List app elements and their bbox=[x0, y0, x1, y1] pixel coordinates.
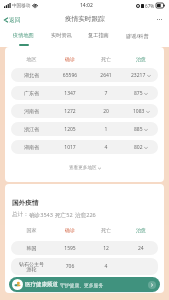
button[interactable]: 河南省 bbox=[11, 104, 158, 118]
staticText: 湖南省 bbox=[11, 144, 52, 150]
staticText: 1083 bbox=[133, 108, 145, 115]
staticText: 1347 bbox=[52, 90, 88, 97]
staticText: 医疗健康频道 bbox=[25, 281, 58, 288]
staticText: 广东省 bbox=[11, 90, 52, 96]
staticText: 875 bbox=[134, 90, 143, 97]
staticText: 确诊 bbox=[52, 227, 88, 233]
staticText: 复工指南 bbox=[88, 32, 109, 39]
staticText: 14:02 bbox=[80, 2, 93, 9]
button[interactable]: More options bbox=[154, 15, 165, 24]
button[interactable]: 返回 bbox=[2, 14, 23, 25]
staticText: 钻石公主号 游轮 bbox=[11, 261, 52, 273]
staticText: 2641 bbox=[88, 72, 124, 79]
staticText: 河南省 bbox=[11, 108, 52, 114]
staticText: 6 bbox=[88, 283, 124, 290]
staticText: 23217 bbox=[131, 72, 146, 79]
staticText: 治愈 bbox=[124, 56, 158, 62]
button[interactable]: 广东省 bbox=[11, 86, 158, 100]
staticText: 7 bbox=[88, 90, 124, 97]
staticText: 湖北省 bbox=[11, 72, 52, 78]
staticText: 治愈 bbox=[124, 227, 158, 233]
staticText: 4 bbox=[88, 263, 124, 270]
staticText: 浙江省 bbox=[11, 126, 52, 132]
staticText: 4 bbox=[88, 144, 124, 151]
button[interactable]: 钻石公主号 游轮 bbox=[11, 258, 158, 275]
staticText: 65596 bbox=[52, 72, 88, 79]
staticText: 守护健康、更多服务 bbox=[60, 282, 104, 288]
button[interactable]: 实时资讯 bbox=[51, 27, 72, 44]
button[interactable]: 辟谣/科普 bbox=[126, 27, 149, 44]
staticText: 死亡 bbox=[88, 56, 124, 62]
staticText: 706 bbox=[52, 263, 88, 270]
staticText: 20 bbox=[88, 108, 124, 115]
staticText: 国外疫情 bbox=[12, 199, 39, 207]
staticText: 1205 bbox=[52, 126, 88, 133]
staticText: 治愈226 bbox=[75, 211, 96, 219]
staticText: 1595 bbox=[52, 245, 88, 252]
staticText: 日本 bbox=[11, 283, 52, 289]
staticText: 确诊3543 bbox=[29, 211, 55, 219]
staticText: 67% bbox=[145, 3, 155, 9]
button[interactable]: 日本 bbox=[11, 279, 158, 293]
staticText: 885 bbox=[134, 126, 143, 133]
staticText: 1017 bbox=[52, 144, 88, 151]
staticText: 辟谣/科普 bbox=[126, 32, 149, 39]
staticText: 国家 bbox=[11, 227, 52, 233]
staticText: 疫情实时跟踪 bbox=[65, 15, 105, 23]
staticText: 802 bbox=[134, 144, 143, 151]
button[interactable]: 韩国 bbox=[11, 241, 158, 255]
staticText: 确诊 bbox=[52, 56, 88, 62]
staticText: 疫情地图 bbox=[13, 32, 34, 39]
staticText: 1 bbox=[88, 126, 124, 133]
staticText: 总计： bbox=[12, 211, 29, 218]
button[interactable]: 疫情地图 bbox=[13, 27, 34, 46]
button[interactable]: 湖北省 bbox=[11, 68, 158, 82]
staticText: 274 bbox=[52, 283, 88, 290]
staticText: 死亡 bbox=[88, 227, 124, 233]
staticText: 返回 bbox=[9, 16, 21, 23]
staticText: 1272 bbox=[52, 108, 88, 115]
button[interactable]: 复工指南 bbox=[88, 27, 109, 44]
button[interactable]: 查看更多地区 bbox=[5, 154, 164, 182]
button[interactable]: 医疗健康频道 bbox=[9, 277, 160, 292]
staticText: 中国移动 bbox=[12, 3, 31, 9]
staticText: 24 bbox=[138, 245, 144, 252]
other: Open health channel bbox=[148, 281, 156, 289]
staticText: 韩国 bbox=[11, 245, 52, 251]
button[interactable]: 湖南省 bbox=[11, 140, 158, 154]
staticText: 地区 bbox=[11, 56, 52, 62]
staticText: 死亡52 bbox=[55, 211, 75, 219]
button[interactable]: 浙江省 bbox=[11, 122, 158, 136]
staticText: 12 bbox=[88, 245, 124, 252]
staticText: 查看更多地区 bbox=[69, 165, 97, 171]
staticText: 实时资讯 bbox=[51, 32, 72, 39]
